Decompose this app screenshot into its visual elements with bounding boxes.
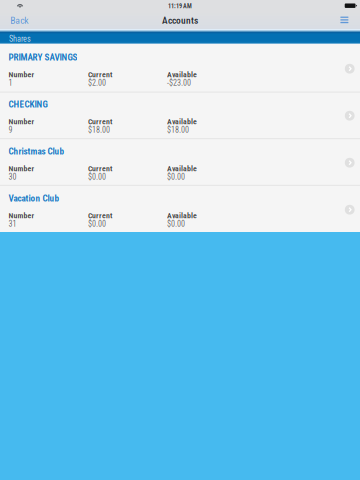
button[interactable]: Christmas Club	[0, 138, 360, 185]
staticText: -$23.00	[167, 78, 191, 88]
staticText: Accounts	[162, 15, 198, 26]
staticText: Christmas Club	[8, 146, 64, 157]
staticText: $2.00	[88, 78, 106, 88]
staticText: Number	[8, 211, 34, 220]
button[interactable]: Back	[0, 12, 37, 29]
staticText: $0.00	[167, 219, 185, 229]
staticText: Current	[88, 211, 112, 220]
button[interactable]: Vacation Club	[0, 185, 360, 232]
staticText: 11:19 AM	[168, 2, 192, 10]
staticText: 1	[8, 78, 12, 88]
staticText: Available	[167, 164, 197, 173]
button[interactable]: CHECKING	[0, 91, 360, 138]
staticText: CHECKING	[8, 99, 47, 110]
staticText: Number	[8, 164, 34, 173]
staticText: $0.00	[167, 172, 185, 182]
button[interactable]: PRIMARY SAVINGS	[0, 44, 360, 91]
staticText: Shares	[9, 34, 31, 44]
staticText: $18.00	[88, 125, 110, 135]
staticText: Current	[88, 117, 112, 126]
staticText: Available	[167, 117, 197, 126]
staticText: Number	[8, 117, 34, 126]
staticText: Current	[88, 164, 112, 173]
staticText: Current	[88, 70, 112, 79]
staticText: Vacation Club	[8, 193, 59, 204]
staticText: Number	[8, 70, 34, 79]
staticText: 9	[8, 125, 12, 135]
staticText: Back	[10, 15, 28, 26]
button[interactable]: Menu	[335, 12, 354, 29]
staticText: Available	[167, 211, 197, 220]
staticText: $0.00	[88, 219, 106, 229]
staticText: PRIMARY SAVINGS	[8, 52, 77, 63]
staticText: 30	[8, 172, 16, 182]
staticText: Available	[167, 70, 197, 79]
staticText: $0.00	[88, 172, 106, 182]
staticText: $18.00	[167, 125, 189, 135]
staticText: 31	[8, 219, 16, 229]
